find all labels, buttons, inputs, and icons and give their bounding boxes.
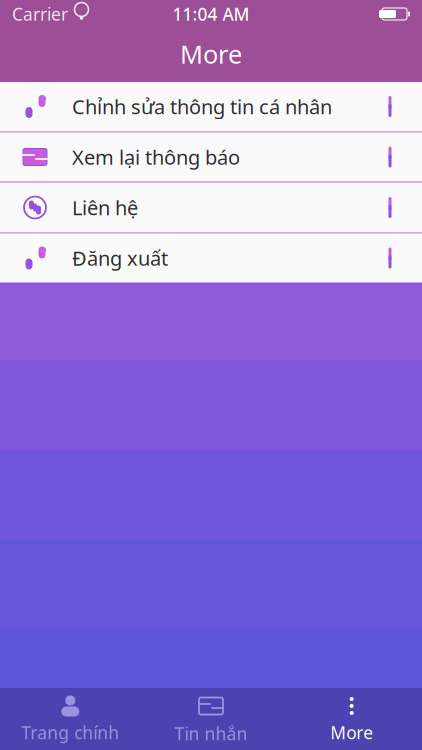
button[interactable]: Tin nhắn [141, 688, 281, 750]
button[interactable]: Xem lại thông báo [0, 132, 422, 181]
staticText: Liên hệ [72, 194, 138, 221]
staticText: More [180, 37, 242, 71]
staticText: Đăng xuất [72, 245, 168, 271]
button[interactable]: Liên hệ [0, 183, 422, 232]
staticText: Trang chính [21, 721, 119, 744]
staticText: Xem lại thông báo [72, 144, 240, 170]
button[interactable]: Chỉnh sửa thông tin cá nhân [0, 82, 422, 131]
button[interactable]: Đăng xuất [0, 233, 422, 282]
button[interactable]: Trang chính [0, 688, 141, 750]
staticText: More [330, 721, 373, 744]
staticText: Chỉnh sửa thông tin cá nhân [72, 93, 332, 120]
staticText: Tin nhắn [174, 722, 247, 745]
staticText: 11:04 AM [172, 2, 249, 25]
staticText: Carrier [12, 2, 68, 25]
button[interactable]: More [281, 688, 422, 750]
